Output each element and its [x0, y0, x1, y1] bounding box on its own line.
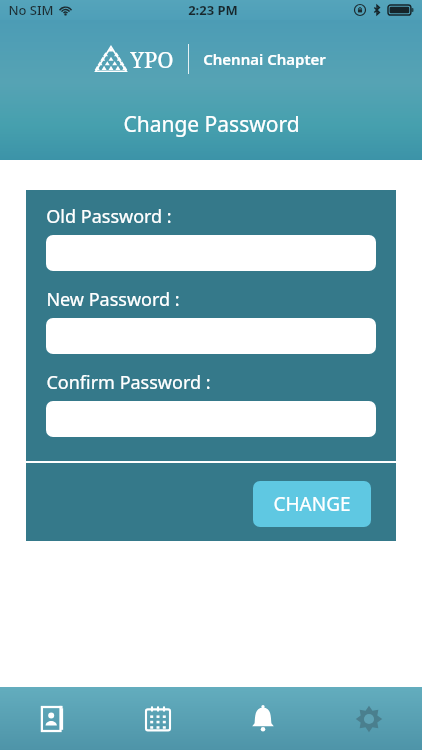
button[interactable]: [46, 318, 376, 354]
staticText: New Password :: [46, 287, 180, 312]
button[interactable]: Settings: [316, 687, 422, 750]
button[interactable]: [46, 401, 376, 437]
staticText: Old Password :: [46, 204, 172, 229]
staticText: Change Password: [123, 110, 300, 139]
staticText: CHANGE: [273, 491, 351, 517]
staticText: Chennai Chapter: [203, 49, 326, 69]
staticText: YPO: [130, 44, 174, 74]
button[interactable]: Notifications: [210, 687, 316, 750]
button[interactable]: CHANGE: [253, 481, 371, 527]
button[interactable]: Calendar: [105, 687, 210, 750]
staticText: Confirm Password :: [46, 370, 211, 395]
staticText: 2:23 PM: [188, 1, 238, 19]
staticText: No SIM: [8, 1, 54, 19]
button[interactable]: [46, 235, 376, 271]
button[interactable]: Contacts: [0, 687, 105, 750]
